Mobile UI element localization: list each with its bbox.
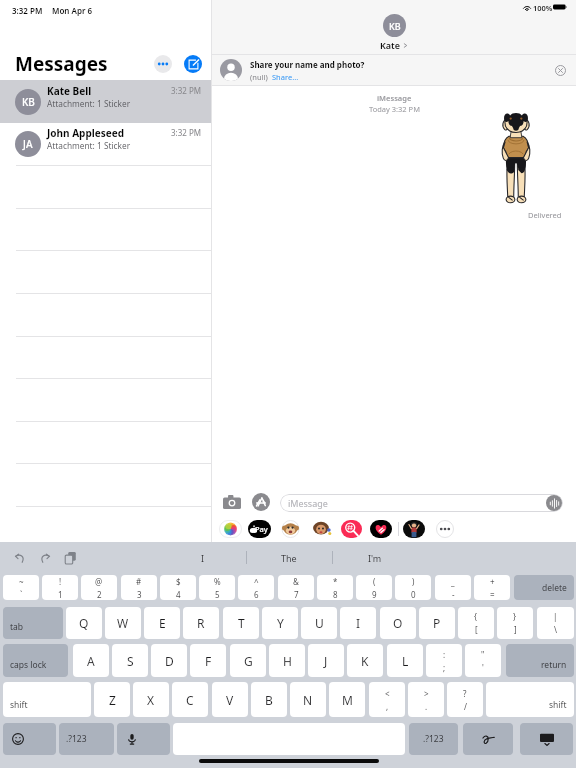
button[interactable]: L <box>387 644 423 677</box>
button[interactable]: Compose new message <box>184 55 202 73</box>
button[interactable]: KB <box>0 80 211 123</box>
button[interactable]: Z <box>94 682 130 717</box>
button[interactable]: Share your name and photo? <box>212 55 576 85</box>
staticText: Today 3:32 PM <box>369 104 420 114</box>
button[interactable]: I <box>160 542 246 573</box>
button[interactable]: Camera <box>221 491 243 513</box>
button[interactable]: M <box>329 682 365 717</box>
button[interactable]: Dictate <box>117 723 170 755</box>
button[interactable]: C <box>172 682 208 717</box>
button[interactable]: .?123 <box>59 723 114 755</box>
button[interactable]: shift <box>486 682 574 717</box>
button[interactable]: { <box>458 607 494 639</box>
button[interactable]: Emoji <box>3 723 56 755</box>
button[interactable]: shift <box>3 682 91 717</box>
button[interactable]: ! <box>42 575 78 600</box>
button[interactable]: $ <box>160 575 196 600</box>
button[interactable]: Memoji <box>403 520 425 538</box>
button[interactable]: Photos <box>219 520 242 538</box>
button[interactable]: ^ <box>238 575 274 600</box>
staticText: N <box>303 692 313 708</box>
button[interactable]: : <box>426 644 462 677</box>
button[interactable]: Hide keyboard <box>520 723 573 755</box>
staticText: .?123 <box>423 733 444 745</box>
button[interactable]: .?123 <box>409 723 458 755</box>
button[interactable]: & <box>278 575 314 600</box>
button[interactable]: S <box>112 644 148 677</box>
button[interactable]: Undo <box>11 549 29 567</box>
button[interactable]: T <box>223 607 259 639</box>
staticText: ' <box>482 662 484 673</box>
button[interactable]: return <box>506 644 574 677</box>
staticText: Attachment: 1 Sticker <box>47 98 131 109</box>
button[interactable]: R <box>183 607 219 639</box>
button[interactable]: Animoji <box>279 520 302 538</box>
button[interactable]: ? <box>447 682 483 717</box>
button[interactable]: O <box>380 607 416 639</box>
staticText: D <box>165 653 174 669</box>
button[interactable]: delete <box>514 575 574 600</box>
button[interactable]: Apple Pay <box>248 520 271 538</box>
button[interactable]: Handwriting <box>463 723 513 755</box>
staticText: 7 <box>294 589 299 600</box>
button[interactable]: J <box>308 644 344 677</box>
button[interactable]: F <box>190 644 226 677</box>
button[interactable]: W <box>105 607 141 639</box>
button[interactable]: % <box>199 575 235 600</box>
button[interactable]: " <box>465 644 501 677</box>
button[interactable]: _ <box>435 575 471 600</box>
button[interactable]: JA <box>0 122 211 165</box>
button[interactable]: * <box>317 575 353 600</box>
button[interactable]: Paste <box>61 549 79 567</box>
button[interactable]: tab <box>3 607 63 639</box>
staticText: KB <box>389 20 401 32</box>
button[interactable]: # <box>121 575 157 600</box>
button[interactable]: KB <box>383 14 406 37</box>
button[interactable]: Digital Touch <box>370 520 392 538</box>
button[interactable]: E <box>144 607 180 639</box>
button[interactable]: P <box>419 607 455 639</box>
button[interactable]: ( <box>356 575 392 600</box>
button[interactable]: X <box>133 682 169 717</box>
button[interactable]: B <box>251 682 287 717</box>
button[interactable]: iMessage <box>280 494 563 512</box>
button[interactable]: caps lock <box>3 644 68 677</box>
button[interactable]: K <box>347 644 383 677</box>
button[interactable]: The <box>246 542 332 573</box>
button[interactable]: Q <box>66 607 102 639</box>
button[interactable]: ~ <box>3 575 39 600</box>
button[interactable]: More apps <box>435 520 455 538</box>
button[interactable]: More options <box>154 55 172 73</box>
staticText: ^ <box>254 576 259 587</box>
button[interactable]: D <box>151 644 187 677</box>
button[interactable]: Memoji stickers <box>310 520 332 538</box>
button[interactable]: } <box>497 607 533 639</box>
staticText: I <box>356 615 361 631</box>
button[interactable]: @ <box>81 575 117 600</box>
staticText: shift <box>10 699 28 711</box>
button[interactable]: I'm <box>332 542 418 573</box>
button[interactable]: > <box>408 682 444 717</box>
button[interactable]: Y <box>262 607 298 639</box>
staticText: # <box>136 576 142 587</box>
button[interactable]: Dismiss <box>554 64 567 77</box>
button[interactable]: | <box>537 607 574 639</box>
button[interactable]: H <box>269 644 305 677</box>
staticText: ? <box>463 688 467 699</box>
staticText: % <box>214 576 221 587</box>
button[interactable]: Redo <box>36 549 54 567</box>
staticText: - <box>452 589 455 600</box>
button[interactable]: U <box>301 607 337 639</box>
button[interactable]: + <box>474 575 510 600</box>
button[interactable]: I <box>340 607 376 639</box>
button[interactable]: N <box>290 682 326 717</box>
button[interactable]: App Store <box>250 491 272 513</box>
button[interactable]: V <box>212 682 248 717</box>
button[interactable]: < <box>369 682 405 717</box>
button[interactable]: Images <box>341 520 362 538</box>
button[interactable]: A <box>73 644 109 677</box>
button[interactable]: Audio message <box>546 495 562 511</box>
button[interactable]: G <box>230 644 266 677</box>
button[interactable]: ) <box>395 575 431 600</box>
